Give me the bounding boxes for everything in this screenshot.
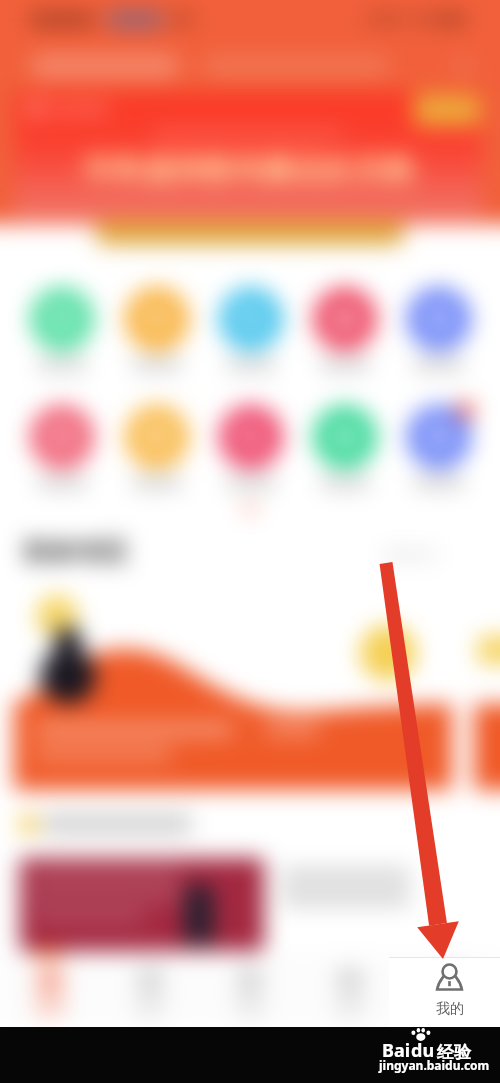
button[interactable] — [14, 287, 109, 371]
button[interactable] — [298, 405, 392, 489]
staticText: du — [411, 1038, 435, 1063]
button[interactable] — [109, 287, 204, 371]
button[interactable] — [298, 287, 392, 371]
button[interactable] — [109, 405, 204, 489]
button[interactable] — [204, 405, 298, 489]
button[interactable] — [200, 957, 300, 1013]
staticText: 年终盛典数码爆品欢乐购 — [83, 150, 413, 188]
staticText: jingyan.baidu.com — [379, 1057, 490, 1073]
button[interactable] — [204, 287, 298, 371]
staticText: 我的 — [436, 1000, 464, 1018]
button[interactable] — [400, 957, 500, 1013]
staticText: 秒杀专区 — [24, 536, 128, 569]
staticText: Bai — [382, 1038, 411, 1063]
button[interactable] — [392, 287, 486, 371]
button[interactable] — [392, 405, 486, 489]
button[interactable]: 我的 — [389, 957, 500, 1027]
staticText: 经验 — [437, 1042, 471, 1063]
button[interactable] — [0, 957, 100, 1013]
button[interactable] — [100, 957, 200, 1013]
button[interactable] — [14, 405, 109, 489]
button[interactable] — [300, 957, 400, 1013]
